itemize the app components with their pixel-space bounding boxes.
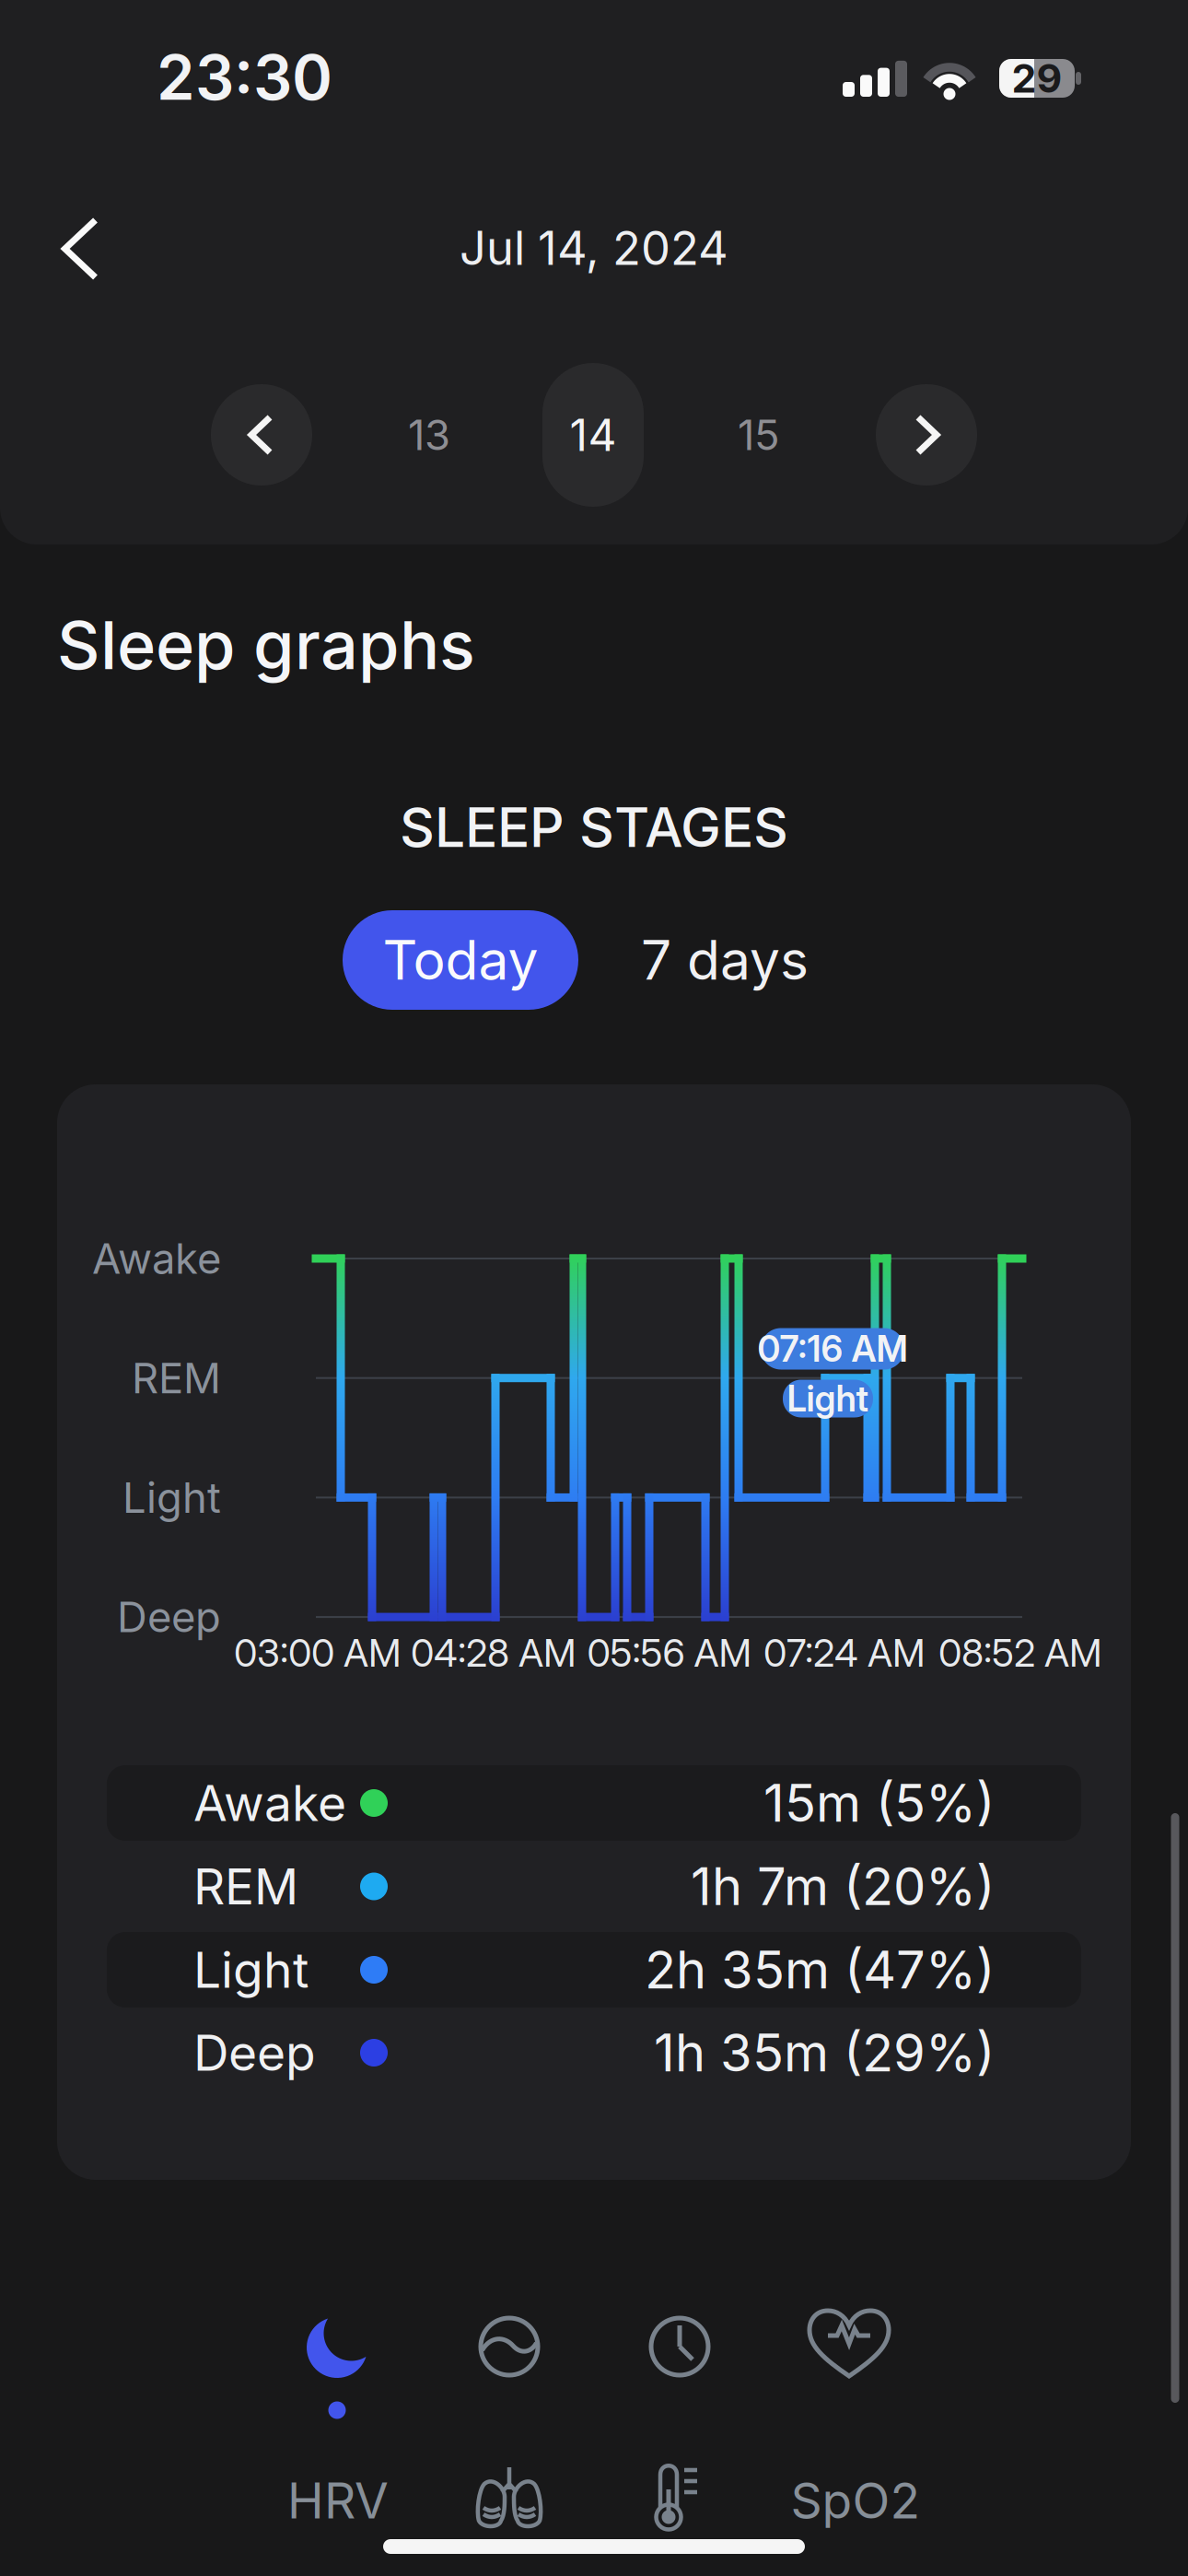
staticText: 2h 35m (47%) — [645, 1939, 995, 2000]
staticText: 07:24 AM — [763, 1630, 926, 1675]
staticText: Light — [122, 1473, 221, 1522]
staticText: 14 — [570, 409, 617, 461]
staticText: 08:52 AM — [938, 1630, 1102, 1675]
staticText: Light — [787, 1378, 869, 1420]
staticText: Deep — [193, 2024, 316, 2082]
staticText: SpO2 — [791, 2471, 920, 2529]
staticText: 03:00 AM — [234, 1630, 402, 1675]
staticText: HRV — [287, 2471, 389, 2529]
staticText: Deep — [117, 1592, 221, 1642]
staticText: REM — [193, 1857, 298, 1915]
staticText: Sleep graphs — [57, 606, 475, 684]
staticText: SLEEP STAGES — [400, 795, 788, 859]
staticText: Awake — [193, 1774, 346, 1832]
staticText: Jul 14, 2024 — [460, 220, 728, 275]
staticText: 1h 35m (29%) — [654, 2022, 995, 2083]
staticText: 04:28 AM — [411, 1630, 577, 1675]
staticText: 07:16 AM — [757, 1328, 908, 1370]
staticText: 29 — [1012, 55, 1062, 101]
staticText: 23:30 — [157, 41, 332, 114]
staticText: REM — [132, 1353, 221, 1403]
staticText: Awake — [92, 1234, 221, 1283]
staticText: Today — [383, 928, 538, 992]
staticText: 05:56 AM — [587, 1630, 752, 1675]
staticText: 1h 7m (20%) — [691, 1856, 995, 1917]
staticText: 15m (5%) — [763, 1773, 995, 1834]
staticText: Light — [193, 1941, 309, 1999]
staticText: 7 days — [641, 928, 809, 992]
staticText: 13 — [408, 410, 450, 460]
staticText: 15 — [738, 410, 780, 460]
